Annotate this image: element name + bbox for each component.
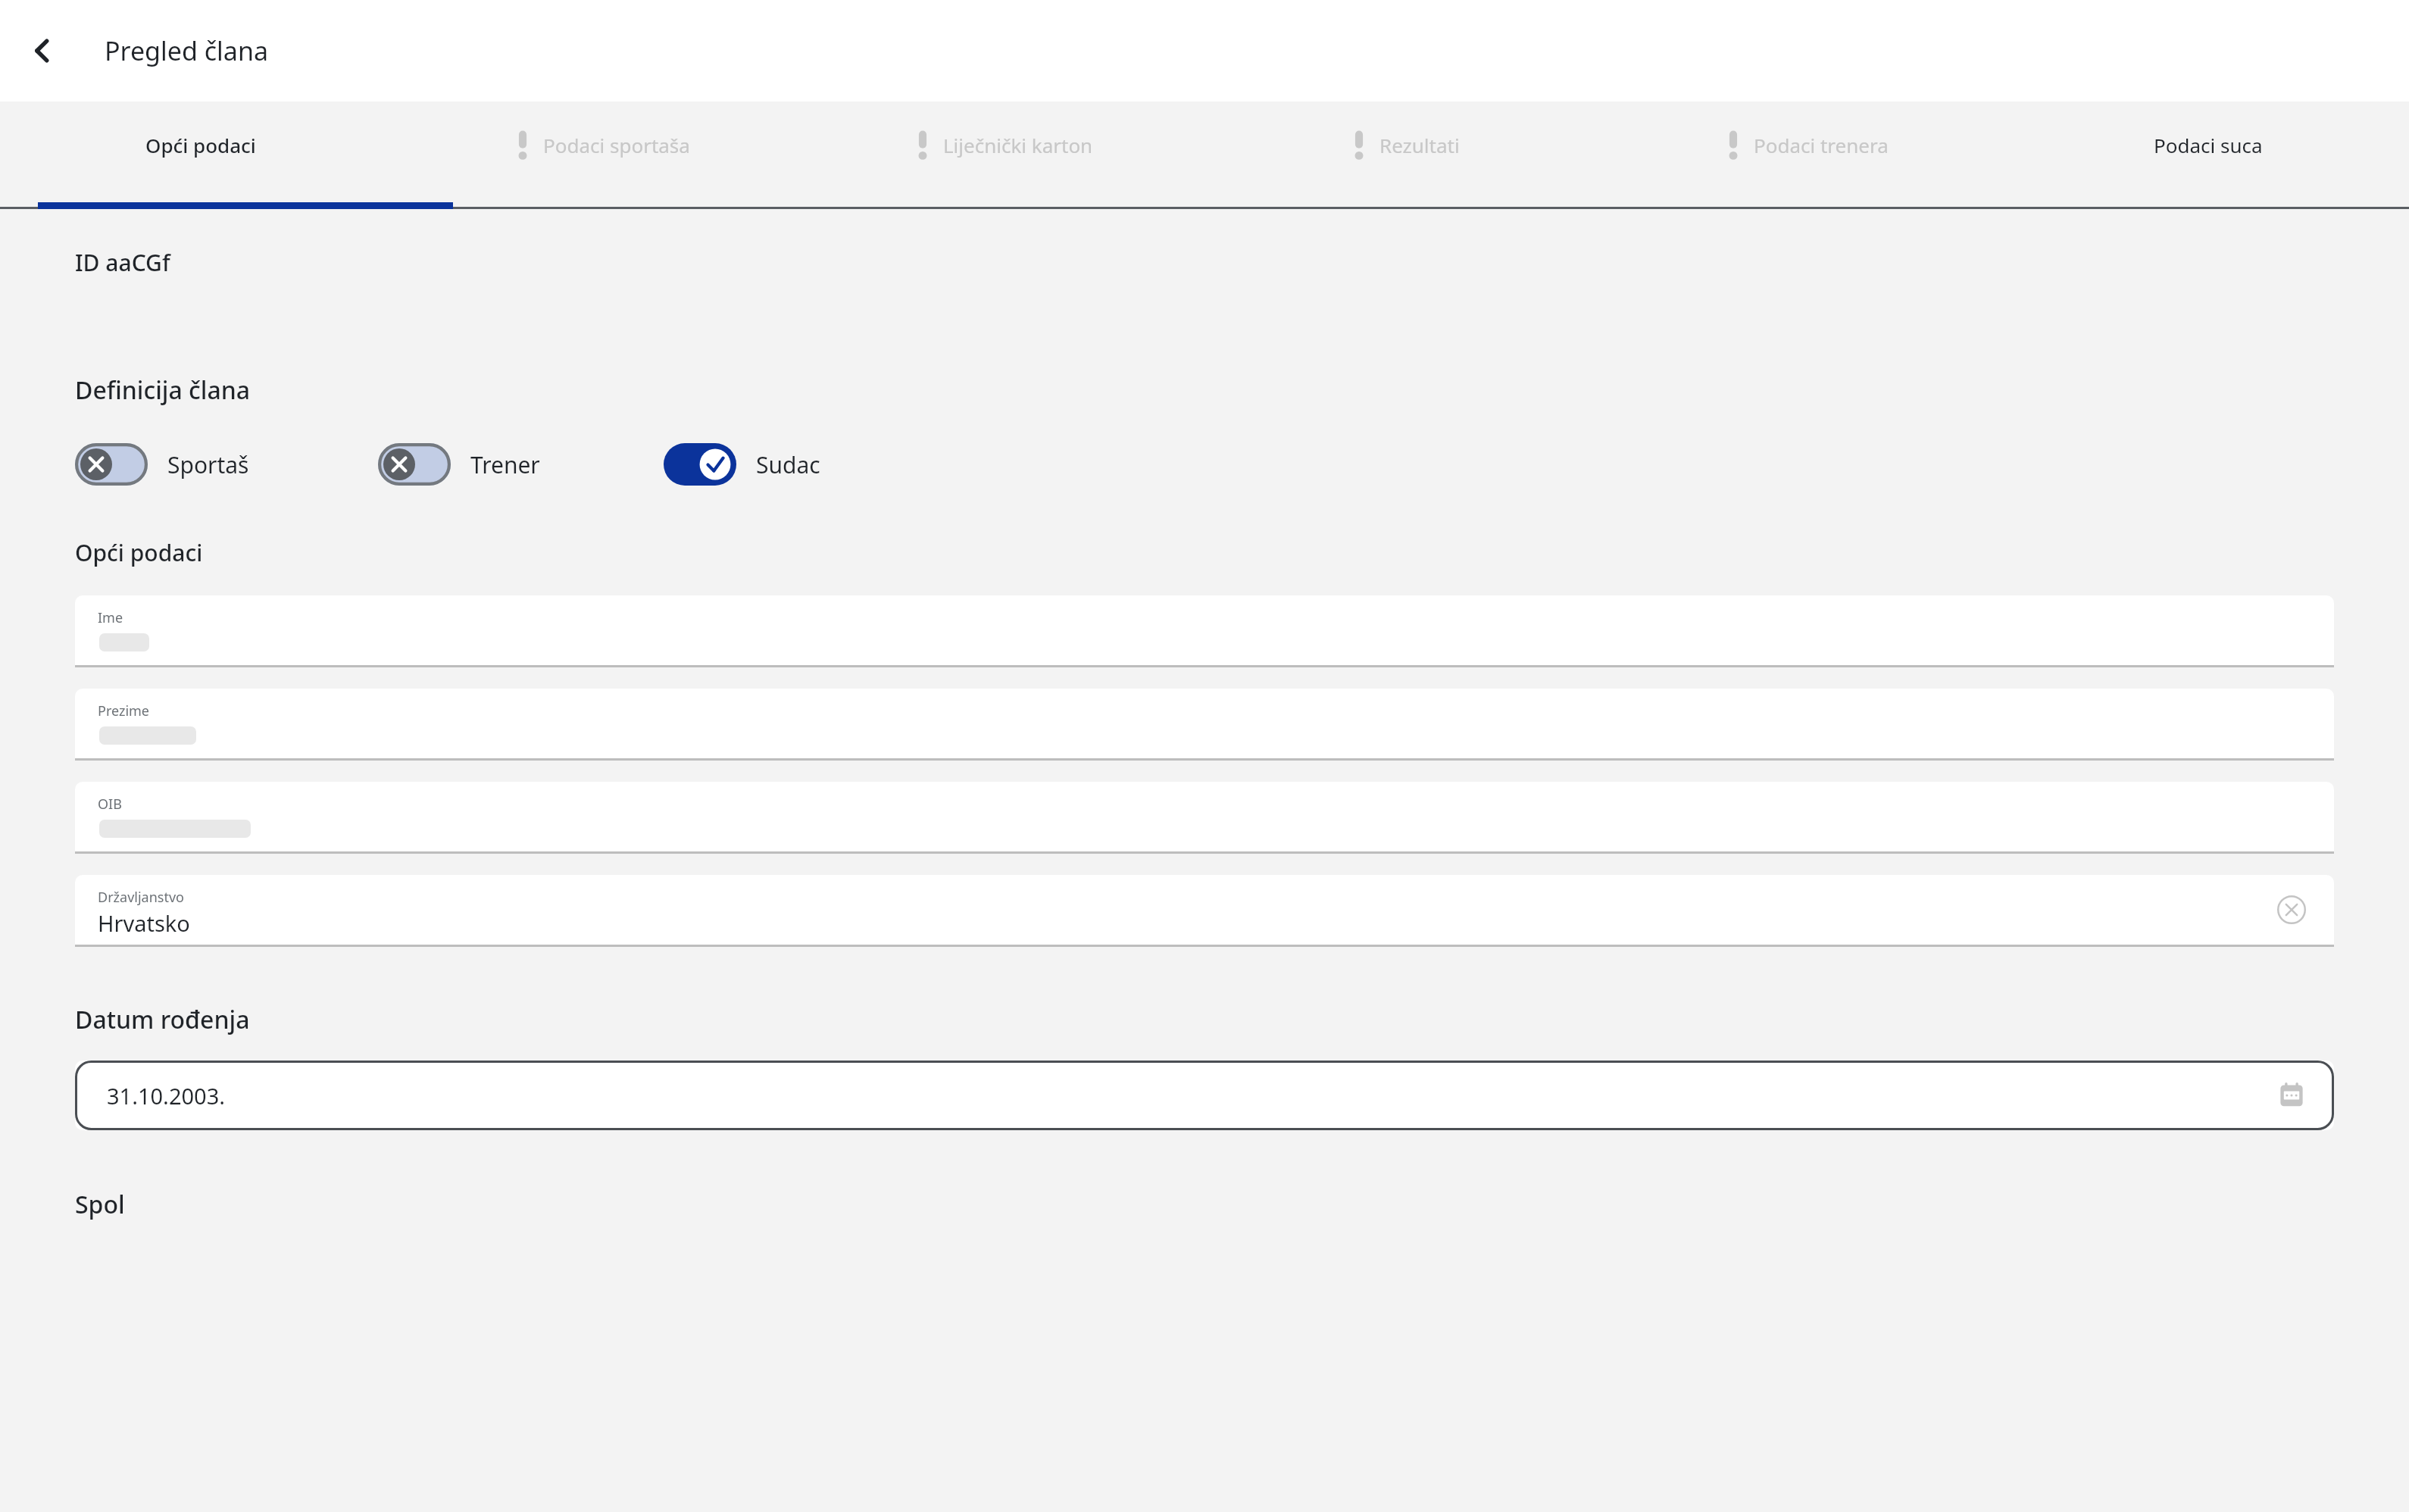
staticText: OIB bbox=[98, 795, 122, 814]
button[interactable]: Sudac bbox=[664, 443, 820, 486]
staticText: ID aaCGf bbox=[75, 247, 170, 278]
staticText: Podaci trenera bbox=[1754, 132, 1889, 158]
button[interactable]: Rezultati bbox=[1204, 102, 1606, 209]
staticText: Podaci sportaša bbox=[543, 132, 690, 158]
staticText: Državljanstvo bbox=[98, 888, 184, 907]
staticText: Opći podaci bbox=[145, 132, 256, 158]
button[interactable]: Ime bbox=[75, 595, 2334, 665]
staticText: Podaci suca bbox=[2154, 132, 2263, 158]
staticText: Ime bbox=[98, 608, 123, 627]
button[interactable]: Liječnički karton bbox=[803, 102, 1204, 209]
button[interactable]: Podaci trenera bbox=[1606, 102, 2007, 209]
button[interactable]: Back bbox=[15, 23, 70, 78]
button[interactable]: Opći podaci bbox=[0, 102, 401, 209]
staticText: Opći podaci bbox=[75, 537, 203, 568]
staticText: Liječnički karton bbox=[943, 132, 1093, 158]
button[interactable]: Podaci sportaša bbox=[401, 102, 803, 209]
button[interactable]: Trener bbox=[378, 443, 540, 486]
button[interactable]: Clear bbox=[2269, 887, 2314, 933]
button[interactable]: 31.10.2003. bbox=[75, 1061, 2334, 1130]
staticText: Spol bbox=[75, 1188, 125, 1221]
button[interactable]: Podaci suca bbox=[2007, 102, 2409, 209]
button[interactable]: OIB bbox=[75, 782, 2334, 851]
staticText: Prezime bbox=[98, 701, 150, 720]
staticText: Sportaš bbox=[167, 449, 249, 480]
staticText: 31.10.2003. bbox=[107, 1081, 226, 1111]
staticText: Trener bbox=[470, 449, 540, 480]
staticText: Definicija člana bbox=[75, 373, 251, 407]
staticText: Pregled člana bbox=[105, 33, 268, 68]
staticText: Hrvatsko bbox=[98, 908, 190, 938]
button[interactable]: Open calendar bbox=[2270, 1074, 2313, 1117]
staticText: Datum rođenja bbox=[75, 1003, 250, 1036]
staticText: Rezultati bbox=[1379, 132, 1460, 158]
button[interactable]: Državljanstvo bbox=[75, 875, 2334, 945]
button[interactable]: Sportaš bbox=[75, 443, 249, 486]
button[interactable]: Prezime bbox=[75, 689, 2334, 758]
staticText: Sudac bbox=[756, 449, 820, 480]
